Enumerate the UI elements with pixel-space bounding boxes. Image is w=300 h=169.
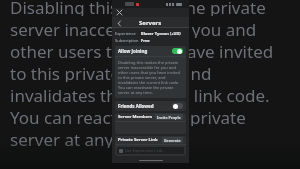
button[interactable]: Allow Joining [115, 46, 186, 56]
button[interactable]: Off [172, 103, 183, 109]
staticText: Private Server Link [118, 137, 158, 143]
staticText: Experience [115, 31, 136, 36]
button[interactable]: Close [115, 8, 124, 17]
staticText: Server Members [118, 114, 153, 120]
staticText: Get Experience Link... [125, 148, 166, 153]
button[interactable]: Experience [115, 31, 186, 36]
button[interactable]: Generate [162, 137, 183, 143]
staticText: Generate [164, 138, 181, 143]
staticText: Disabling this makes the private server … [118, 60, 183, 95]
button[interactable]: Back [114, 18, 124, 28]
button[interactable]: Friends Allowed [115, 101, 186, 111]
staticText: to this private server, and [10, 62, 212, 82]
button[interactable]: Get Experience Link... [117, 147, 184, 154]
staticText: Disabling this makes the private [10, 0, 266, 16]
staticText: invalidates the current link code. [10, 84, 270, 104]
staticText: Invite People [157, 115, 181, 120]
staticText: Friends Allowed [118, 103, 154, 109]
staticText: Allow Joining [118, 48, 148, 54]
staticText: Subscription Price [115, 38, 141, 43]
staticText: Free [141, 38, 150, 43]
staticText: Servers [139, 19, 162, 27]
staticText: server inaccessible for you and [10, 18, 257, 38]
staticText: You can reactivate the private [10, 106, 246, 126]
button[interactable]: Invite People [155, 114, 183, 120]
button[interactable]: On [172, 48, 183, 54]
button[interactable]: Subscription Price [115, 38, 186, 43]
staticText: other users that you have invited [10, 40, 274, 60]
staticText: Blaxer Tycoon (+UX) [141, 31, 181, 36]
staticText: server at any time. [10, 128, 159, 148]
